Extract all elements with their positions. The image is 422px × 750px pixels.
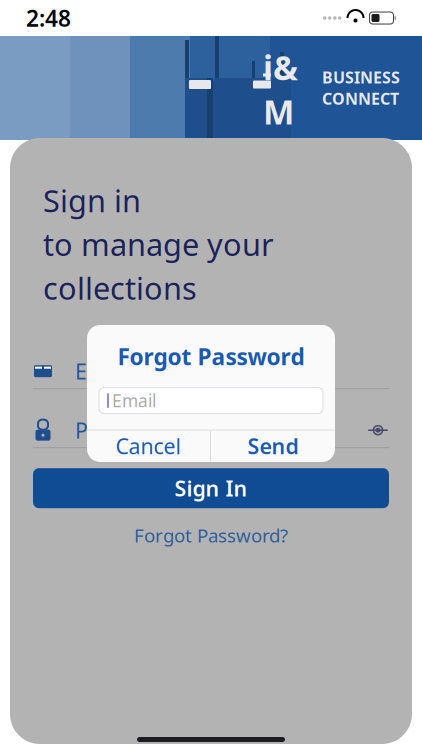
button[interactable]: Forgot Password?	[33, 524, 389, 546]
staticText: Email	[75, 357, 131, 385]
staticText: Sign in	[43, 180, 141, 221]
staticText: Forgot Password	[117, 341, 304, 371]
button[interactable]: Show password	[367, 421, 389, 439]
staticText: BUSINESS	[322, 67, 400, 88]
button[interactable]: Cancel	[87, 431, 210, 462]
button[interactable]: Send	[211, 431, 335, 462]
staticText: CONNECT	[322, 88, 399, 109]
staticText: Password	[75, 416, 171, 444]
staticText: to manage your	[43, 224, 274, 264]
staticText: Cancel	[115, 432, 181, 460]
staticText: Send	[247, 432, 298, 460]
staticText: Forgot Password?	[134, 523, 288, 548]
staticText: 2:48	[26, 3, 71, 33]
staticText: Sign In	[174, 474, 247, 502]
staticText: Email	[112, 389, 156, 412]
staticText: i&M	[263, 45, 298, 134]
staticText: collections	[43, 267, 197, 308]
button[interactable]: Sign In	[33, 468, 389, 508]
